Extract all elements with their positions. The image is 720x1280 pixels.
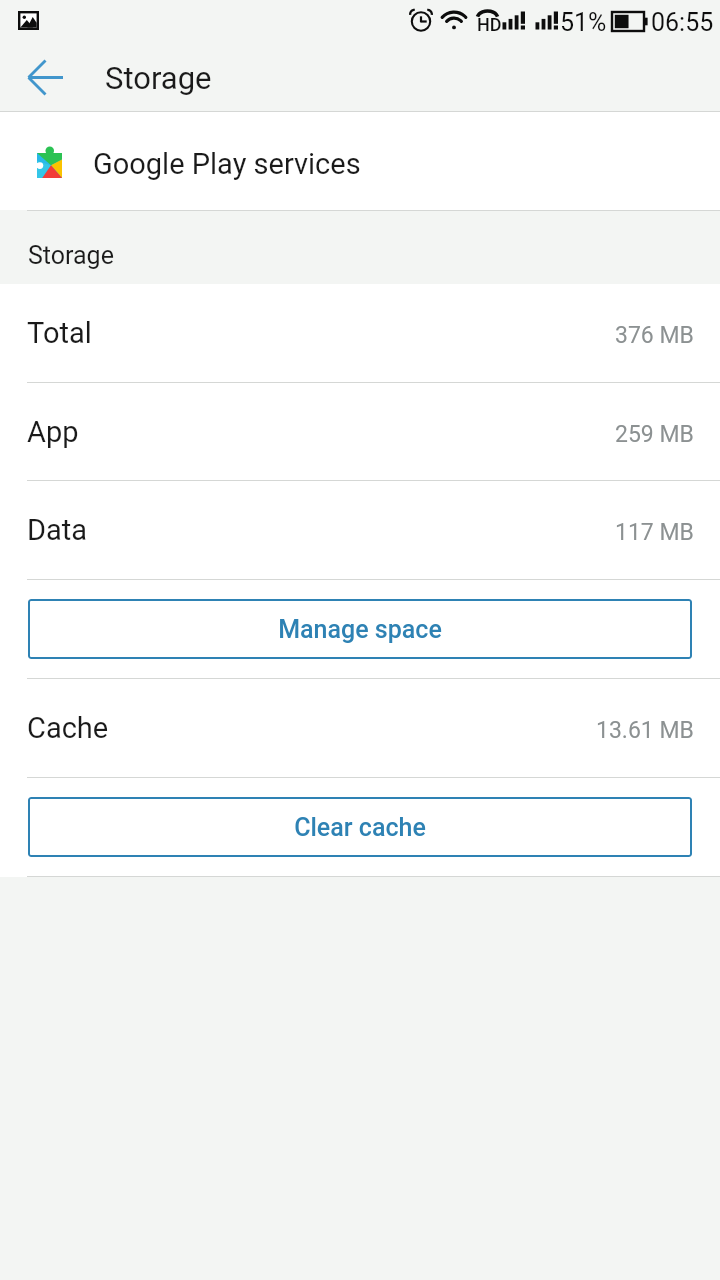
staticText: 51% (560, 8, 607, 37)
staticText: Storage (105, 60, 212, 96)
button[interactable]: Google Play services (0, 112, 720, 210)
staticText: Manage space (278, 615, 442, 644)
staticText: App (27, 415, 79, 449)
button[interactable]: Data (0, 481, 720, 579)
staticText: Storage (28, 241, 114, 270)
staticText: 117 MB (615, 519, 694, 546)
staticText: Data (27, 513, 88, 547)
button[interactable]: Navigate up (0, 44, 92, 111)
staticText: 259 MB (615, 421, 694, 448)
button[interactable]: App (0, 383, 720, 480)
staticText: 376 MB (615, 322, 694, 349)
staticText: 13.61 MB (596, 717, 694, 744)
staticText: Total (27, 316, 92, 350)
staticText: 06:55 (651, 8, 714, 37)
staticText: HD (477, 14, 502, 35)
staticText: Google Play services (93, 147, 361, 181)
button[interactable]: Manage space (28, 599, 692, 659)
staticText: Cache (27, 711, 109, 745)
staticText: Clear cache (294, 813, 426, 842)
button[interactable]: Total (0, 284, 720, 382)
button[interactable]: Cache (0, 679, 720, 777)
button[interactable]: Clear cache (28, 797, 692, 857)
